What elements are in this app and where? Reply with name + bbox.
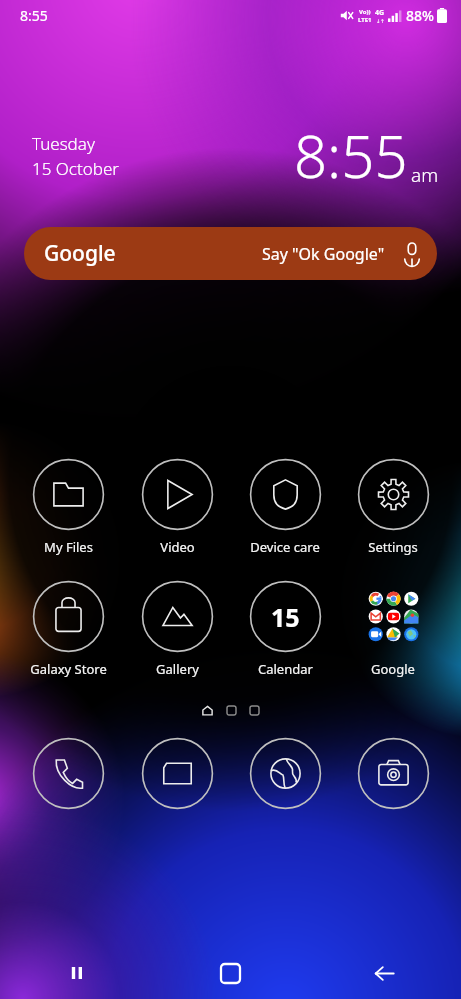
staticText: Galaxy Store [30,660,107,678]
staticText: Video [160,538,195,556]
button[interactable]: Google [24,227,437,280]
button[interactable]: Recents [0,947,153,999]
staticText: Google [44,239,116,268]
staticText: Vo)) [359,8,371,16]
button[interactable]: Messages [123,737,231,810]
staticText: 15 October [32,157,120,180]
button[interactable]: Camera [339,737,447,810]
button[interactable]: Tuesday [32,116,439,195]
staticText: 15 [271,600,300,634]
button[interactable]: 15 [231,580,339,678]
button[interactable]: Internet [231,737,339,810]
staticText: Gallery [156,660,199,678]
staticText: Tuesday [32,132,95,155]
staticText: 8:55 [294,116,408,195]
button[interactable]: Galaxy Store [14,580,123,678]
staticText: Say "Ok Google" [262,243,385,265]
button[interactable]: My Files [14,458,123,556]
button[interactable]: Video [123,458,231,556]
button[interactable]: Device care [231,458,339,556]
staticText: My Files [44,538,93,556]
other: Voice search [401,243,423,265]
staticText: LTE1 [358,16,372,24]
staticText: 88% [406,6,434,25]
staticText: ↓↑ [376,18,385,24]
button[interactable]: Google [339,580,447,678]
staticText: am [411,162,439,188]
staticText: Device care [250,538,320,556]
button[interactable]: Settings [339,458,447,556]
staticText: Calendar [258,660,313,678]
button[interactable]: Home [153,947,307,999]
staticText: 8:55 [20,6,48,25]
staticText: Settings [368,538,418,556]
button[interactable]: Back [307,947,461,999]
other: Home page [202,705,213,716]
staticText: 4G [375,8,385,18]
staticText: Google [371,660,415,678]
button[interactable]: Phone [14,737,123,810]
button[interactable]: Gallery [123,580,231,678]
